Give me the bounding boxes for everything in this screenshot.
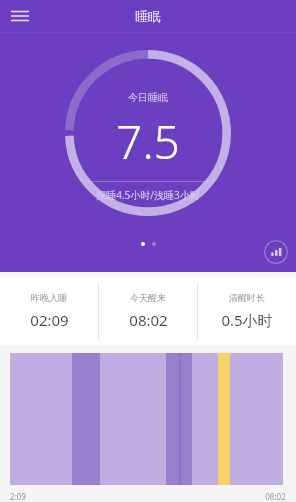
button[interactable]: Sleep timeline chart: [0, 353, 296, 485]
staticText: 睡眠: [135, 8, 161, 24]
staticText: 昨晚入睡: [31, 292, 67, 303]
button[interactable]: Statistics: [264, 240, 288, 264]
staticText: 08:02: [265, 491, 286, 502]
button[interactable]: 今天醒来: [99, 277, 197, 345]
button[interactable]: 清醒时长: [198, 277, 296, 345]
staticText: 今日睡眠: [128, 91, 168, 104]
staticText: 08:02: [129, 310, 168, 330]
staticText: 清醒时长: [229, 292, 265, 303]
staticText: 2:09: [10, 491, 26, 502]
staticText: 深睡4.5小时/浅睡3小时: [96, 188, 200, 202]
staticText: 今天醒来: [130, 292, 166, 303]
button[interactable]: 昨晚入睡: [0, 277, 98, 345]
staticText: 0.5小时: [221, 310, 273, 330]
staticText: 7.5: [116, 110, 180, 173]
staticText: 02:09: [30, 310, 69, 330]
button[interactable]: Menu: [0, 0, 40, 32]
